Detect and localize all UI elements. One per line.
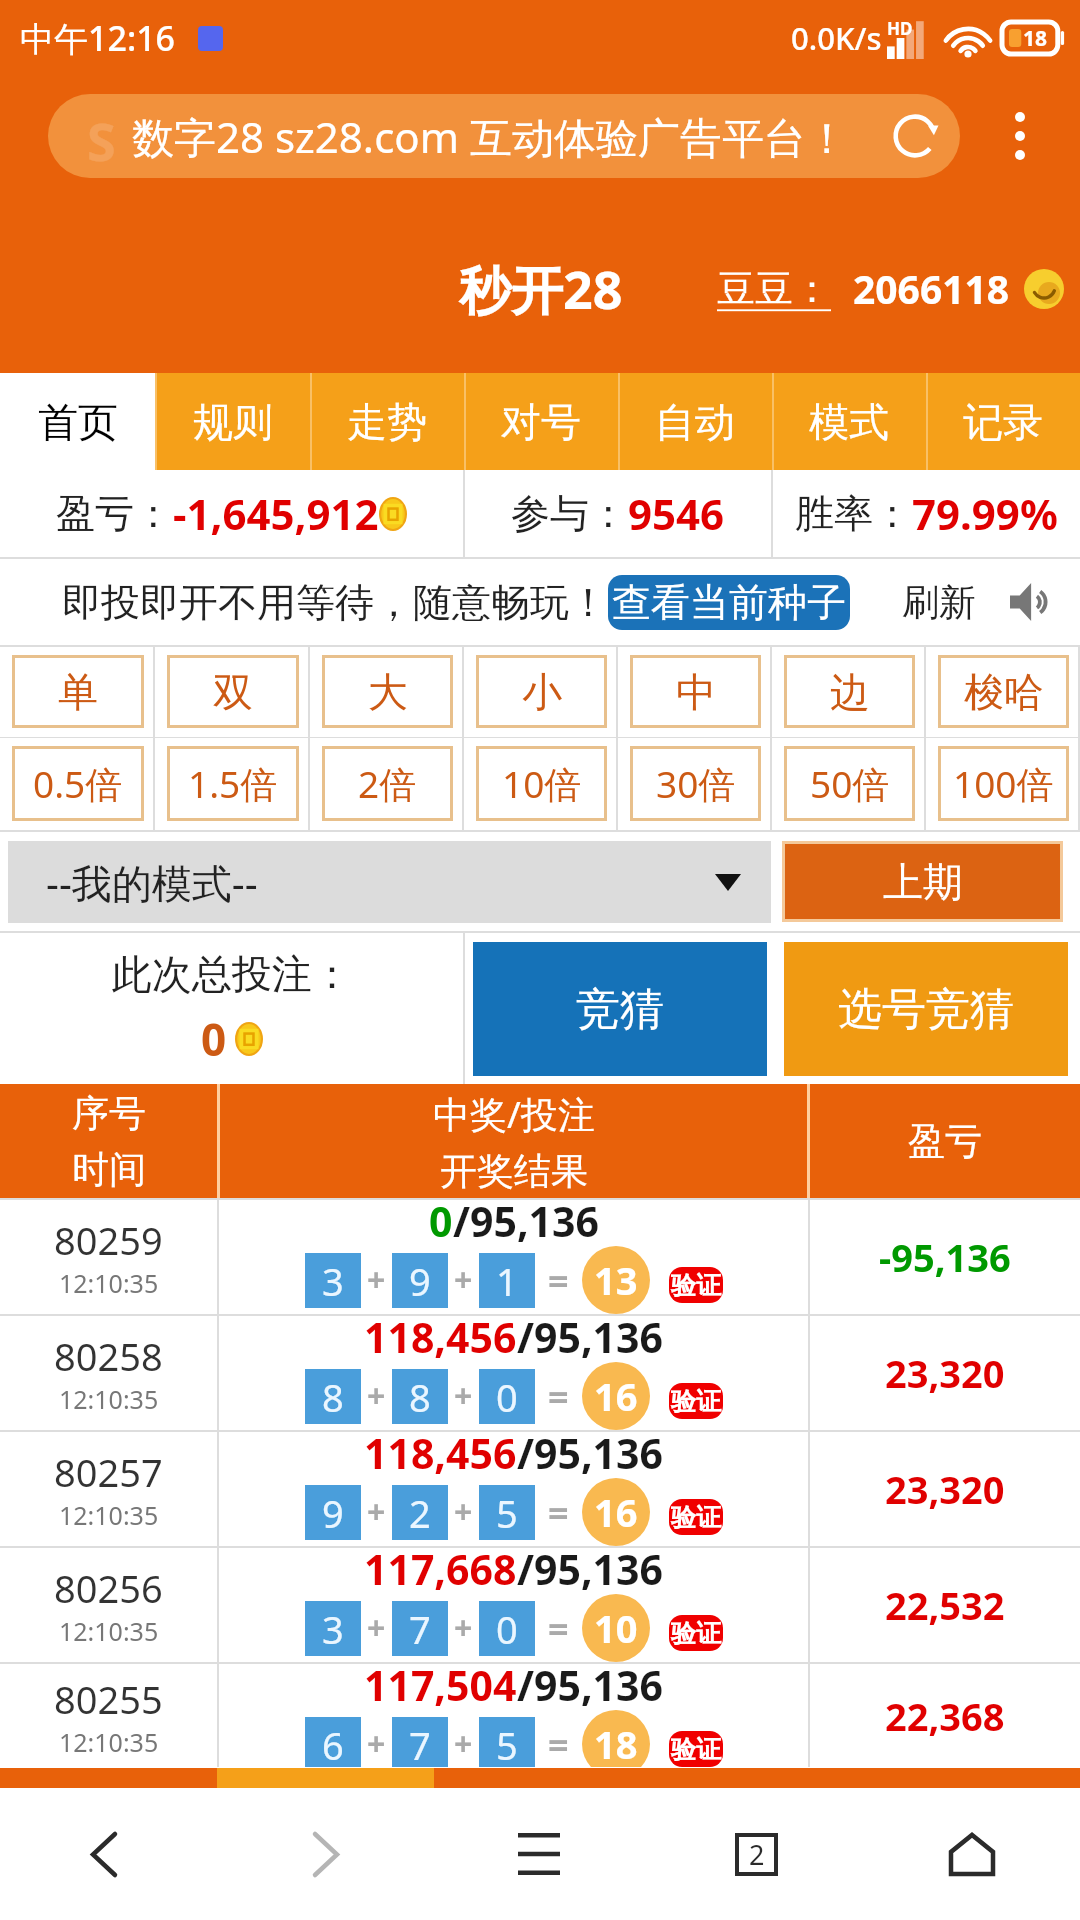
staticText: 中 [676, 667, 716, 717]
staticText: = [548, 1488, 569, 1537]
button[interactable]: 80258 [0, 1316, 1080, 1430]
button[interactable]: 自动 [618, 373, 772, 470]
button[interactable]: S [48, 94, 960, 178]
staticText: + [454, 1258, 473, 1302]
staticText: 盈亏： [56, 489, 173, 538]
button[interactable]: 验证 [669, 1615, 723, 1651]
staticText: 验证 [671, 1502, 721, 1533]
staticText: 自动 [655, 397, 735, 447]
staticText: 5 [496, 1487, 518, 1539]
button[interactable]: Refresh [880, 101, 950, 171]
staticText: 9 [409, 1255, 431, 1307]
staticText: 1 [496, 1255, 518, 1307]
staticText: 80258 [54, 1330, 163, 1382]
button[interactable]: 80259 [0, 1200, 1080, 1314]
staticText: 22,368 [885, 1690, 1005, 1742]
staticText: + [367, 1258, 386, 1302]
button[interactable]: Back [44, 1813, 164, 1895]
staticText: 豆豆： [717, 265, 831, 313]
staticText: 验证 [671, 1734, 721, 1765]
button[interactable]: 1.5倍 [167, 746, 299, 821]
button[interactable]: Home [912, 1813, 1032, 1895]
button[interactable]: 查看当前种子 [608, 575, 850, 630]
staticText: 2 [409, 1487, 431, 1539]
staticText: 边 [830, 667, 870, 717]
staticText: 7 [409, 1603, 431, 1655]
button[interactable]: 验证 [669, 1267, 723, 1303]
button[interactable]: 100倍 [938, 746, 1069, 821]
button[interactable]: 对号 [464, 373, 618, 470]
button[interactable]: Forward [266, 1813, 386, 1895]
staticText: 7 [409, 1719, 431, 1767]
staticText: 18 [1023, 24, 1048, 53]
staticText: 12:10:35 [59, 1266, 159, 1300]
button[interactable]: 记录 [926, 373, 1080, 470]
staticText: 小 [522, 667, 562, 717]
staticText: -95,136 [879, 1231, 1011, 1283]
button[interactable]: More options [960, 76, 1080, 196]
staticText: 2倍 [358, 758, 417, 809]
button[interactable]: 10倍 [476, 746, 607, 821]
staticText: /95,136 [517, 1541, 663, 1597]
staticText: 50倍 [810, 758, 890, 809]
button[interactable]: 模式 [772, 373, 926, 470]
staticText: 开奖结果 [440, 1148, 588, 1195]
button[interactable]: 边 [784, 655, 915, 728]
staticText: 117,504 [364, 1664, 517, 1713]
staticText: + [367, 1490, 386, 1534]
staticText: /95,136 [517, 1664, 663, 1713]
button[interactable]: 验证 [669, 1499, 723, 1535]
button[interactable]: 验证 [669, 1731, 723, 1767]
button[interactable]: 80256 [0, 1548, 1080, 1662]
button[interactable]: 竞猜 [473, 942, 767, 1076]
staticText: 序号 [72, 1090, 146, 1137]
button[interactable]: 2倍 [322, 746, 453, 821]
staticText: 此次总投注： [112, 949, 352, 999]
button[interactable]: 中 [630, 655, 761, 728]
button[interactable]: 50倍 [784, 746, 915, 821]
button[interactable]: Menu [479, 1813, 599, 1895]
button[interactable]: 上期 [785, 844, 1060, 919]
staticText: 竞猜 [576, 982, 664, 1037]
button[interactable]: 30倍 [630, 746, 761, 821]
staticText: 中奖/投注 [433, 1088, 595, 1139]
staticText: 0.0K/s [791, 17, 882, 59]
button[interactable]: 验证 [669, 1383, 723, 1419]
button[interactable]: 双 [167, 655, 299, 728]
staticText: 盈亏 [908, 1118, 982, 1165]
button[interactable]: 选号竞猜 [784, 942, 1068, 1076]
staticText: 79.99% [912, 485, 1058, 542]
staticText: 23,320 [885, 1463, 1005, 1515]
staticText: 首页 [38, 397, 118, 447]
staticText: -1,645,912 [173, 485, 379, 542]
button[interactable]: 80255 [0, 1664, 1080, 1767]
button[interactable]: 规则 [155, 373, 310, 470]
staticText: 16 [594, 1370, 638, 1422]
staticText: 2066118 [853, 262, 1010, 315]
staticText: 80256 [54, 1562, 163, 1614]
staticText: 0 [201, 1009, 227, 1069]
button[interactable]: 首页 [0, 373, 155, 470]
button[interactable]: 单 [12, 655, 144, 728]
staticText: 走势 [347, 397, 427, 447]
staticText: 9 [322, 1487, 344, 1539]
button[interactable]: 大 [322, 655, 453, 728]
button[interactable]: 小 [476, 655, 607, 728]
staticText: = [548, 1256, 569, 1305]
staticText: 12:10:35 [59, 1614, 159, 1648]
staticText: + [367, 1606, 386, 1650]
staticText: + [454, 1722, 473, 1766]
button[interactable]: 0.5倍 [12, 746, 144, 821]
staticText: = [548, 1372, 569, 1421]
staticText: 0 [429, 1193, 453, 1249]
staticText: + [454, 1606, 473, 1650]
staticText: 中午12:16 [20, 15, 176, 61]
staticText: 23,320 [885, 1347, 1005, 1399]
button[interactable]: 梭哈 [938, 655, 1069, 728]
button[interactable]: Sound [1008, 578, 1056, 626]
button[interactable]: --我的模式-- [8, 841, 771, 923]
button[interactable]: 走势 [310, 373, 464, 470]
staticText: 0.5倍 [33, 758, 123, 809]
button[interactable]: Tabs [696, 1813, 816, 1895]
button[interactable]: 80257 [0, 1432, 1080, 1546]
